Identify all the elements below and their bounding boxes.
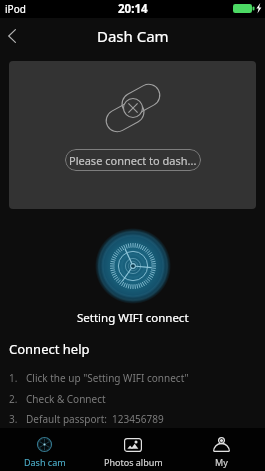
staticText: Dash cam [24,456,66,468]
staticText: Setting WIFI connect [77,310,189,326]
staticText: 1. [9,371,18,385]
button[interactable]: My [177,428,265,471]
staticText: 20:14 [118,1,148,17]
button[interactable]: Photos album [89,428,177,471]
staticText: Dash Cam [97,26,169,46]
staticText: Please connect to dash... [69,153,197,168]
staticText: Photos album [104,456,163,468]
staticText: Check & Connect [26,392,106,406]
button[interactable]: Please connect to dash... [65,149,201,171]
button[interactable]: Back [0,19,24,53]
staticText: My [215,456,228,468]
staticText: iPod [5,2,26,16]
staticText: 2. [9,392,18,406]
staticText: Click the up "Setting WIFI connect" [26,371,189,385]
staticText: 3. [9,412,18,426]
staticText: Connect help [9,340,90,358]
staticText: Default passport: 123456789 [26,412,164,426]
button[interactable]: Dash cam [0,428,89,471]
button[interactable]: Setting WIFI connect [95,228,171,304]
